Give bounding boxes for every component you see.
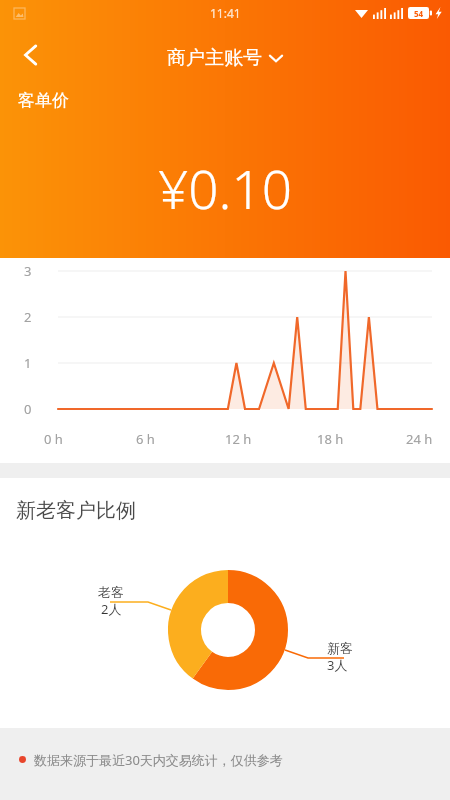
button[interactable]: 商户主账号	[161, 42, 289, 74]
staticText: 24 h	[406, 430, 433, 448]
staticText: 商户主账号	[167, 46, 262, 70]
staticText: 6 h	[136, 430, 155, 448]
staticText: ¥0.10	[158, 152, 292, 224]
staticText: 12 h	[225, 430, 252, 448]
staticText: 0 h	[44, 430, 63, 448]
staticText: 2	[24, 308, 32, 326]
staticText: 新客	[327, 640, 353, 656]
staticText: 老客	[98, 584, 124, 600]
staticText: 客单价	[18, 90, 69, 111]
staticText: 3人	[327, 656, 348, 674]
staticText: 数据来源于最近30天内交易统计，仅供参考	[34, 751, 283, 769]
staticText: 2人	[101, 600, 122, 618]
staticText: 1	[24, 354, 32, 372]
staticText: 新老客户比例	[16, 498, 136, 523]
staticText: 3	[24, 262, 32, 280]
staticText: 18 h	[317, 430, 344, 448]
button[interactable]: Back	[6, 30, 56, 80]
staticText: 54	[414, 8, 424, 19]
staticText: 0	[24, 400, 32, 418]
staticText: 11:41	[210, 5, 241, 21]
